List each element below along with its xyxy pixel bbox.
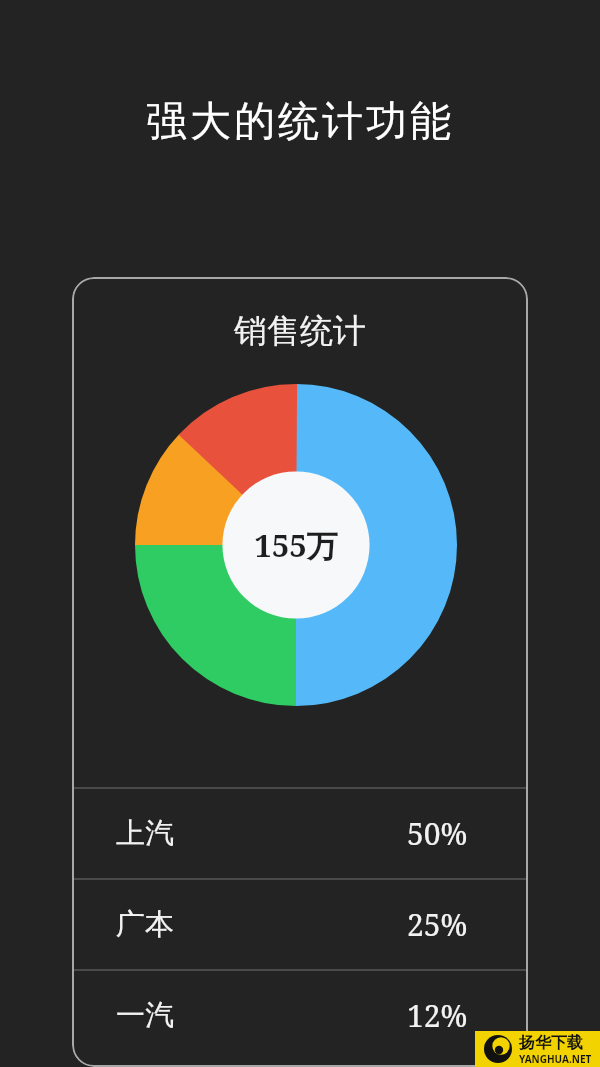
staticText: 强大的统计功能 bbox=[0, 96, 600, 148]
staticText: 25% bbox=[407, 904, 468, 945]
staticText: YANGHUA.NET bbox=[519, 1052, 592, 1066]
staticText: 广本 bbox=[116, 906, 174, 943]
staticText: 155万 bbox=[254, 524, 338, 566]
staticText: 扬华下载 bbox=[519, 1033, 583, 1053]
button[interactable]: 一汽 bbox=[72, 971, 528, 1060]
button[interactable]: 上汽 bbox=[72, 789, 528, 878]
button[interactable]: 销售统计饼图 bbox=[135, 384, 457, 706]
staticText: 一汽 bbox=[116, 997, 174, 1034]
staticText: 12% bbox=[407, 995, 468, 1036]
staticText: 上汽 bbox=[116, 815, 174, 852]
staticText: 50% bbox=[407, 813, 468, 854]
button[interactable]: 广本 bbox=[72, 880, 528, 969]
button[interactable]: 销售统计 bbox=[72, 277, 528, 1067]
staticText: 销售统计 bbox=[72, 310, 528, 352]
